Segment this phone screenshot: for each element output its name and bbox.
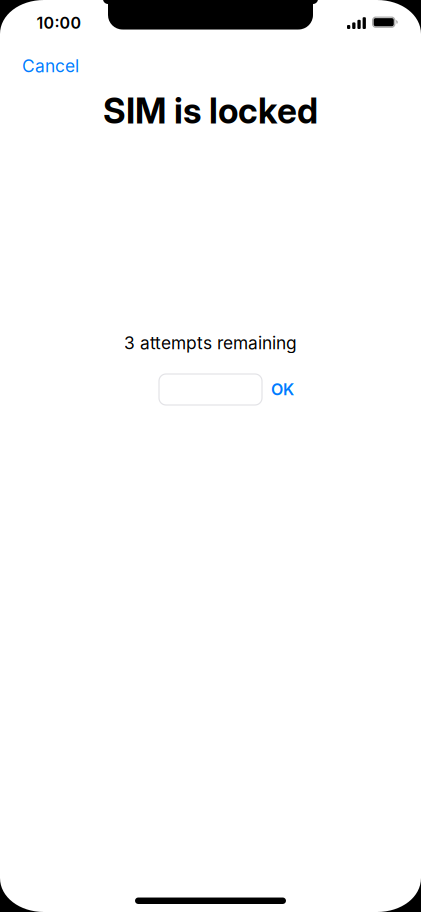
staticText: Cancel (22, 55, 79, 76)
button[interactable]: Cancel (0, 44, 95, 88)
button[interactable]: OK (271, 374, 299, 405)
staticText: 10:00 (36, 13, 81, 33)
staticText: SIM is locked (103, 90, 318, 132)
button[interactable]: SIM PIN (159, 374, 262, 405)
staticText: 3 attempts remaining (124, 332, 297, 353)
staticText: OK (271, 380, 294, 399)
